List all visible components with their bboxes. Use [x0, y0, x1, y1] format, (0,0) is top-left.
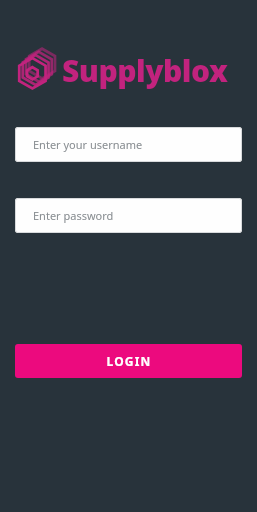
other: Supplyblox logo: [18, 52, 54, 90]
button[interactable]: Enter your username: [15, 127, 242, 162]
button[interactable]: Enter password: [15, 198, 242, 233]
staticText: Enter your username: [33, 137, 143, 152]
staticText: Enter password: [33, 208, 114, 223]
staticText: LOGIN: [106, 353, 152, 369]
button[interactable]: LOGIN: [15, 344, 242, 378]
staticText: Supplyblox: [62, 50, 228, 91]
